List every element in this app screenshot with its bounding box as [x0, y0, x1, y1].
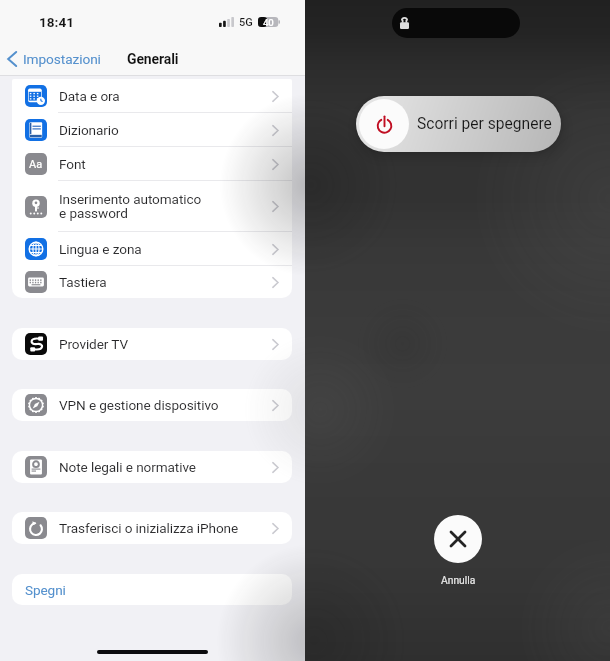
button[interactable]: Data e ora: [12, 79, 292, 113]
staticText: 5G: [239, 16, 253, 29]
staticText: Spegni: [25, 582, 66, 598]
staticText: Annulla: [441, 574, 476, 586]
button[interactable]: Scorri per spegnere: [356, 96, 561, 152]
staticText: Tastiera: [59, 274, 272, 290]
button[interactable]: Inserimento automatico e password: [12, 181, 292, 232]
button[interactable]: Annulla: [434, 515, 482, 586]
staticText: 18:41: [39, 14, 75, 30]
staticText: 40: [263, 17, 274, 27]
staticText: Aa: [29, 158, 43, 171]
staticText: Inserimento automatico e password: [59, 191, 272, 222]
staticText: Dizionario: [59, 122, 272, 138]
button[interactable]: Indietro: [7, 43, 101, 74]
staticText: Trasferisci o inizializza iPhone: [59, 520, 272, 536]
button[interactable]: Tastiera: [12, 266, 292, 298]
staticText: Impostazioni: [23, 51, 101, 67]
button[interactable]: Trasferisci o inizializza iPhone: [12, 512, 292, 544]
staticText: VPN e gestione dispositivo: [59, 397, 272, 413]
staticText: Provider TV: [59, 336, 272, 352]
button[interactable]: Provider TV: [12, 328, 292, 360]
button[interactable]: Dizionario: [12, 113, 292, 147]
staticText: Scorri per spegnere: [417, 115, 552, 133]
button[interactable]: Note legali e normative: [12, 451, 292, 483]
button[interactable]: Lingua e zona: [12, 232, 292, 266]
other: Annulla: [434, 515, 482, 563]
staticText: Note legali e normative: [59, 459, 272, 475]
staticText: Data e ora: [59, 88, 272, 104]
staticText: Lingua e zona: [59, 241, 272, 257]
button[interactable]: VPN e gestione dispositivo: [12, 389, 292, 421]
button[interactable]: Aa: [12, 147, 292, 181]
button[interactable]: Spegni: [12, 574, 292, 605]
staticText: Generali: [127, 51, 179, 67]
other: Indietro: [7, 51, 17, 67]
staticText: Font: [59, 156, 272, 172]
